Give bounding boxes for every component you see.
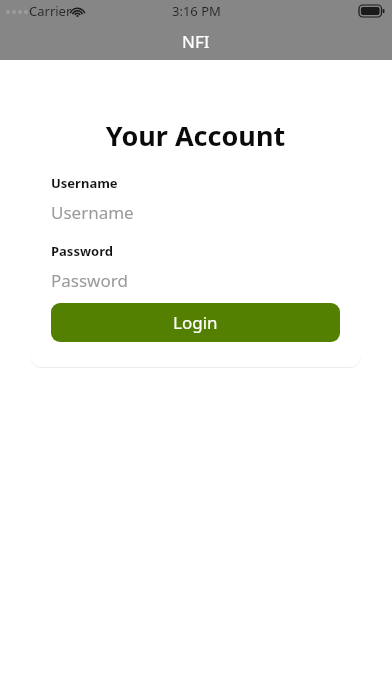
staticText: Password bbox=[51, 242, 113, 260]
button[interactable]: Login bbox=[51, 303, 340, 342]
other: Battery bbox=[359, 5, 384, 17]
staticText: Username bbox=[51, 174, 118, 192]
staticText: Carrier bbox=[29, 2, 72, 20]
staticText: Password bbox=[51, 269, 128, 292]
button[interactable]: Username bbox=[51, 199, 340, 225]
staticText: Username bbox=[51, 201, 134, 224]
staticText: Your Account bbox=[30, 117, 361, 154]
other: Wi-Fi bbox=[70, 4, 85, 19]
button[interactable]: Password bbox=[51, 267, 340, 293]
staticText: NFI bbox=[182, 30, 210, 53]
staticText: Login bbox=[173, 311, 218, 334]
staticText: 3:16 PM bbox=[172, 2, 221, 20]
